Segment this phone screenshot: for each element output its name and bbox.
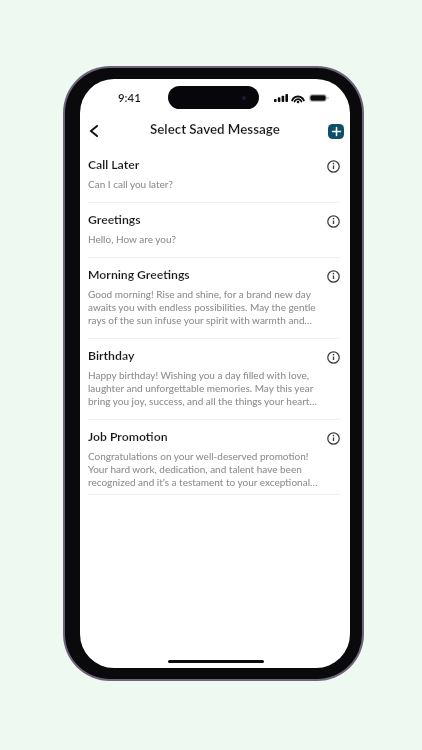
staticText: Congratulations on your well-deserved pr… [88, 450, 318, 488]
staticText: Birthday [88, 348, 135, 363]
staticText: Morning Greetings [88, 267, 190, 282]
button[interactable]: Message info [325, 349, 341, 365]
button[interactable]: Job Promotion [80, 420, 350, 494]
button[interactable]: Add saved message [328, 124, 344, 139]
button[interactable]: Message info [325, 268, 341, 284]
staticText: Call Later [88, 157, 140, 172]
staticText: Can I call you later? [88, 178, 173, 190]
staticText: Greetings [88, 212, 141, 227]
button[interactable]: Birthday [80, 339, 350, 419]
button[interactable]: Message info [325, 158, 341, 174]
button[interactable]: Morning Greetings [80, 258, 350, 338]
staticText: Good morning! Rise and shine, for a bran… [88, 288, 318, 326]
button[interactable]: Greetings [80, 203, 350, 257]
staticText: Hello, How are you? [88, 233, 176, 245]
staticText: Happy birthday! Wishing you a day filled… [88, 369, 318, 407]
staticText: Job Promotion [88, 429, 168, 444]
button[interactable]: Message info [325, 430, 341, 446]
button[interactable]: Message info [325, 213, 341, 229]
staticText: 9:41 [118, 91, 141, 105]
button[interactable]: Back [83, 120, 105, 142]
staticText: Select Saved Message [150, 121, 280, 137]
button[interactable]: Call Later [80, 148, 350, 202]
